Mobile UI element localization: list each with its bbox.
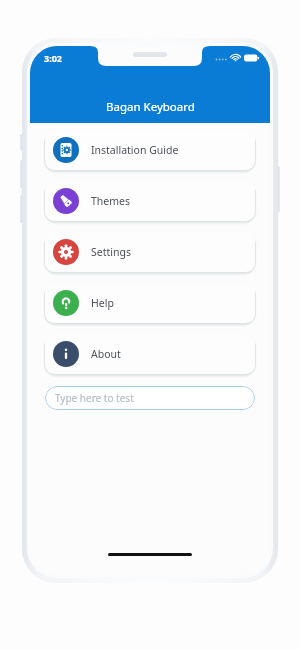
button[interactable]: Themes [45,181,255,221]
staticText: 3:02 [44,52,62,64]
button[interactable]: Settings [45,232,255,272]
staticText: Help [91,296,114,310]
staticText: Settings [91,245,131,259]
staticText: Type here to test [55,391,134,405]
button[interactable]: About [45,334,255,374]
button[interactable]: Type here to test [45,386,255,410]
staticText: About [91,347,121,361]
staticText: Themes [91,194,131,208]
button[interactable]: Help [45,283,255,323]
button[interactable]: Installation Guide [45,130,255,170]
staticText: Installation Guide [91,143,179,157]
staticText: Bagan Keyboard [106,99,195,115]
